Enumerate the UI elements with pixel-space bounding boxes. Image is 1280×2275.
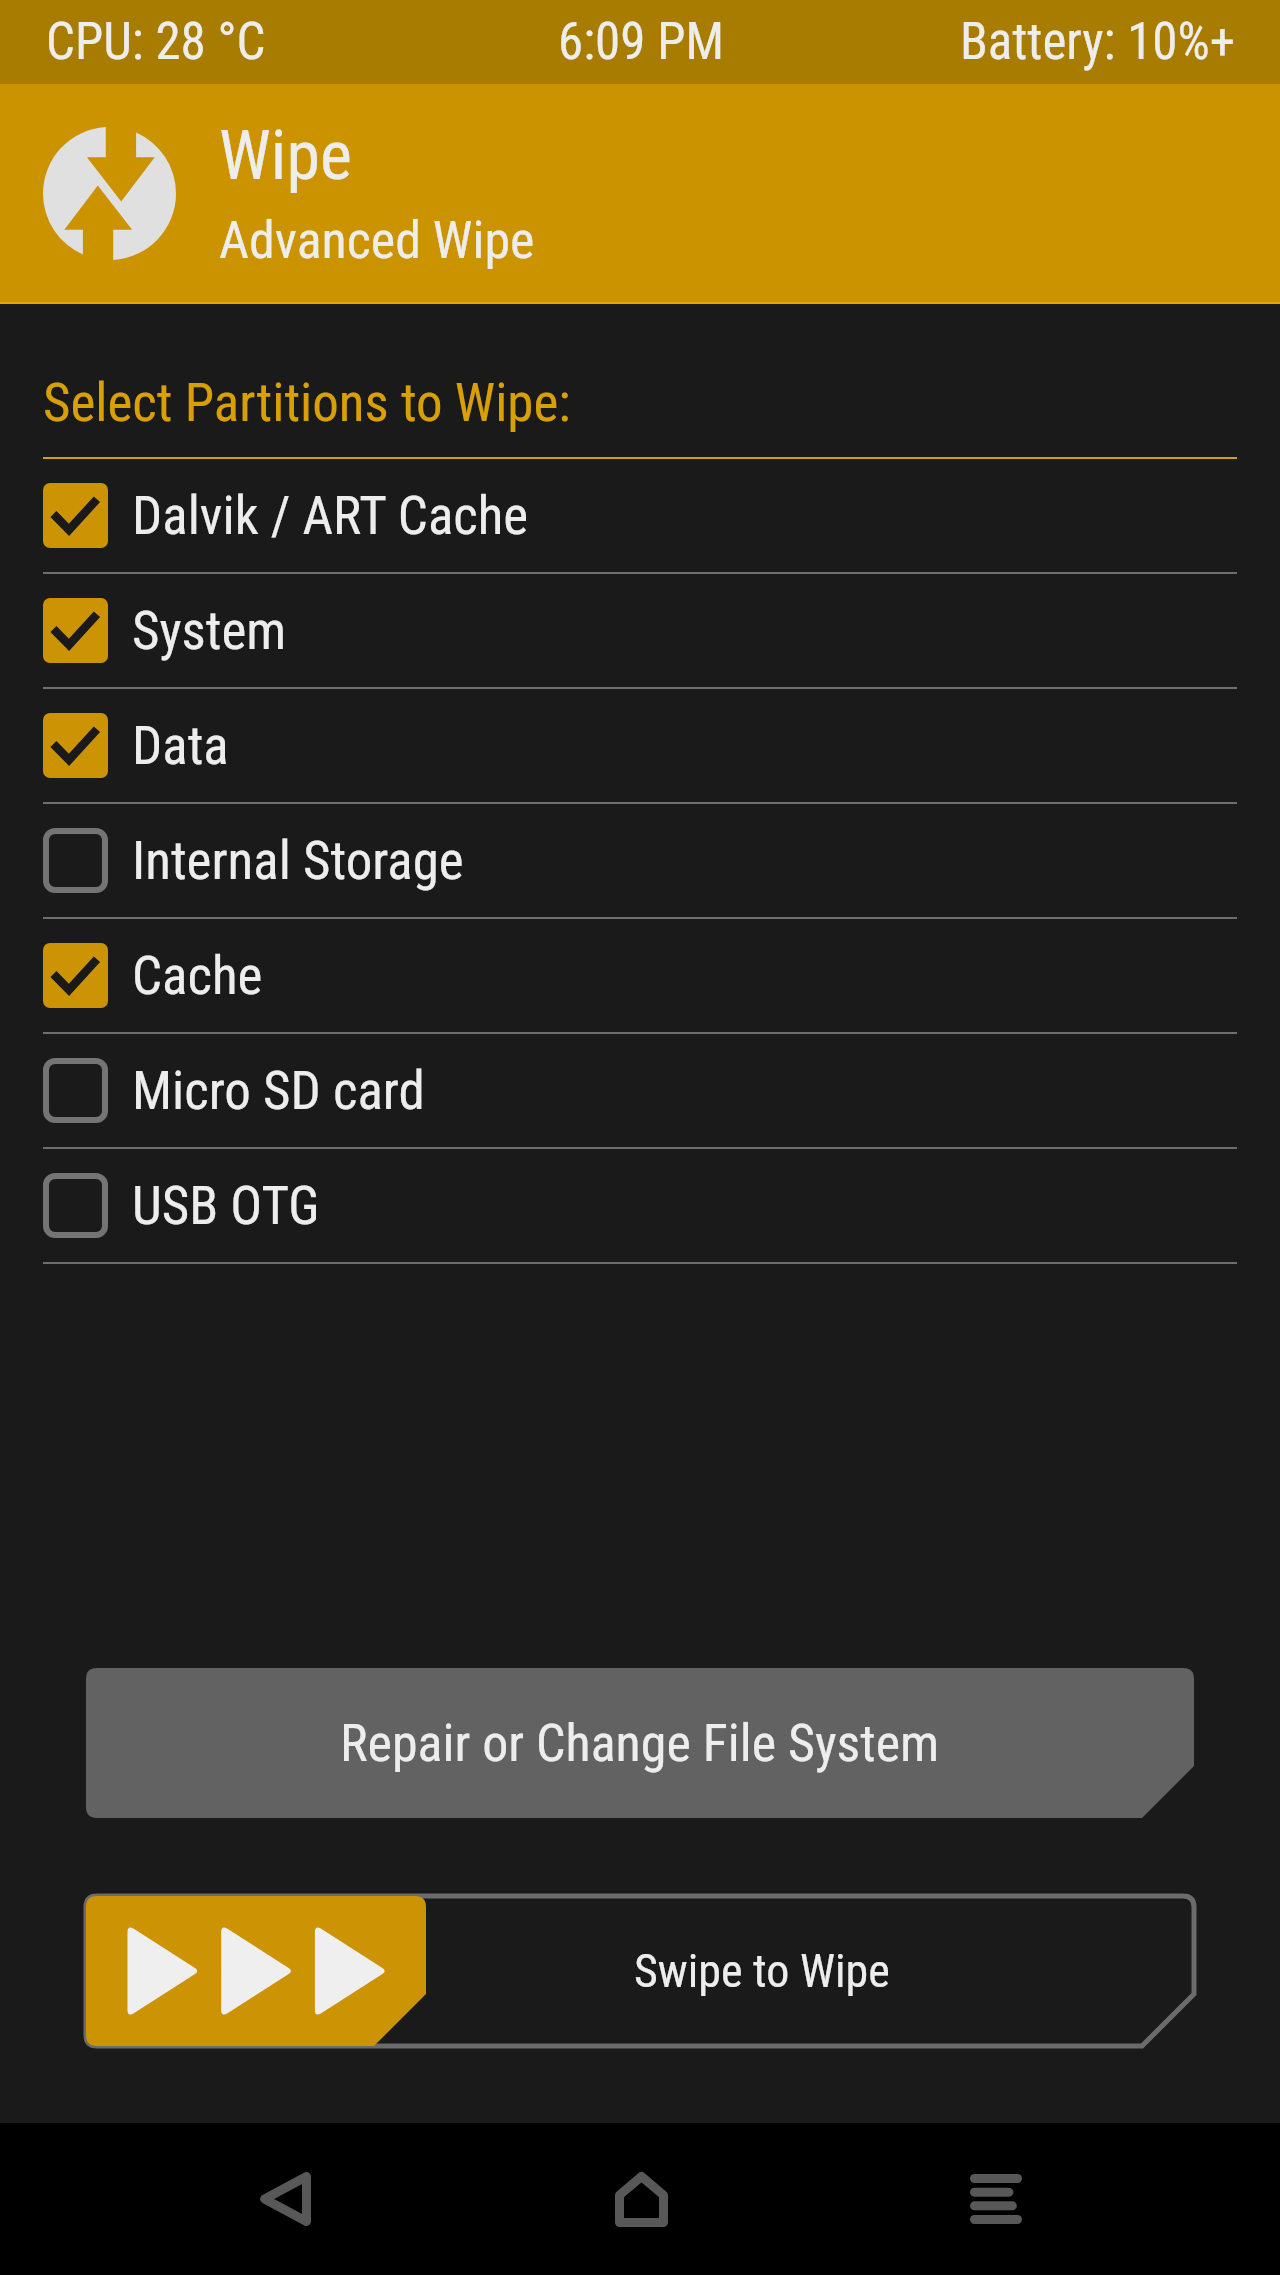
staticText: Repair or Change File System <box>340 1713 940 1774</box>
staticText: System <box>132 600 287 662</box>
staticText: Select Partitions to Wipe: <box>43 372 571 434</box>
button[interactable]: Back <box>225 2139 345 2259</box>
button[interactable]: Menu <box>936 2139 1056 2259</box>
staticText: CPU: 28 °C <box>46 12 266 72</box>
staticText: Internal Storage <box>132 830 464 892</box>
button[interactable]: Repair or Change File System <box>86 1668 1194 1818</box>
staticText: Swipe to Wipe <box>634 1944 890 1998</box>
staticText: Wipe <box>219 116 352 196</box>
staticText: Cache <box>132 945 263 1007</box>
staticText: Advanced Wipe <box>219 210 535 271</box>
staticText: USB OTG <box>132 1175 320 1237</box>
staticText: 6:09 PM <box>558 12 724 72</box>
staticText: Data <box>132 715 229 777</box>
button[interactable]: Cache <box>0 919 1280 1034</box>
button[interactable]: Micro SD card <box>0 1034 1280 1149</box>
button[interactable]: Data <box>0 689 1280 804</box>
button[interactable]: System <box>0 574 1280 689</box>
button[interactable]: USB OTG <box>0 1149 1280 1264</box>
staticText: Dalvik / ART Cache <box>132 485 529 547</box>
staticText: Micro SD card <box>132 1060 425 1122</box>
button[interactable]: Swipe to Wipe <box>86 1896 1194 2046</box>
button[interactable]: Internal Storage <box>0 804 1280 919</box>
staticText: Battery: 10%+ <box>960 12 1236 72</box>
button[interactable]: Dalvik / ART Cache <box>0 459 1280 574</box>
button[interactable]: Home <box>581 2139 701 2259</box>
